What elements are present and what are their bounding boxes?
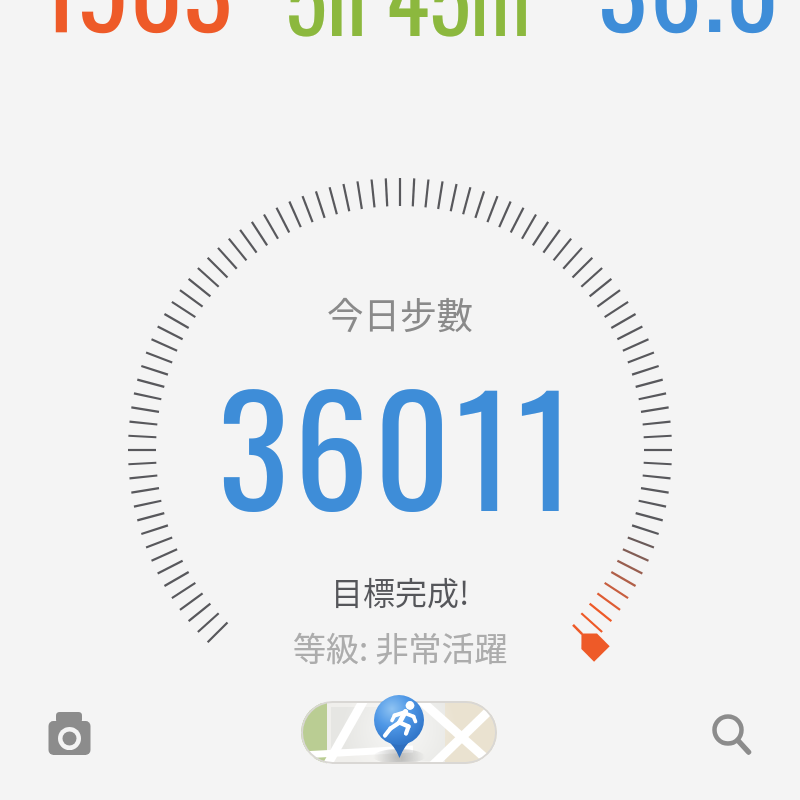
- staticText: 36.0: [598, 0, 782, 62]
- staticText: 1903: [38, 0, 233, 62]
- button[interactable]: [40, 704, 100, 764]
- staticText: 36011: [218, 334, 579, 553]
- staticText: 目標完成!: [331, 568, 470, 614]
- button[interactable]: [700, 702, 760, 762]
- button[interactable]: [301, 701, 497, 764]
- staticText: 等級: 非常活躍: [293, 623, 508, 671]
- staticText: 5h 45m: [285, 0, 531, 61]
- staticText: 今日步數: [327, 287, 473, 340]
